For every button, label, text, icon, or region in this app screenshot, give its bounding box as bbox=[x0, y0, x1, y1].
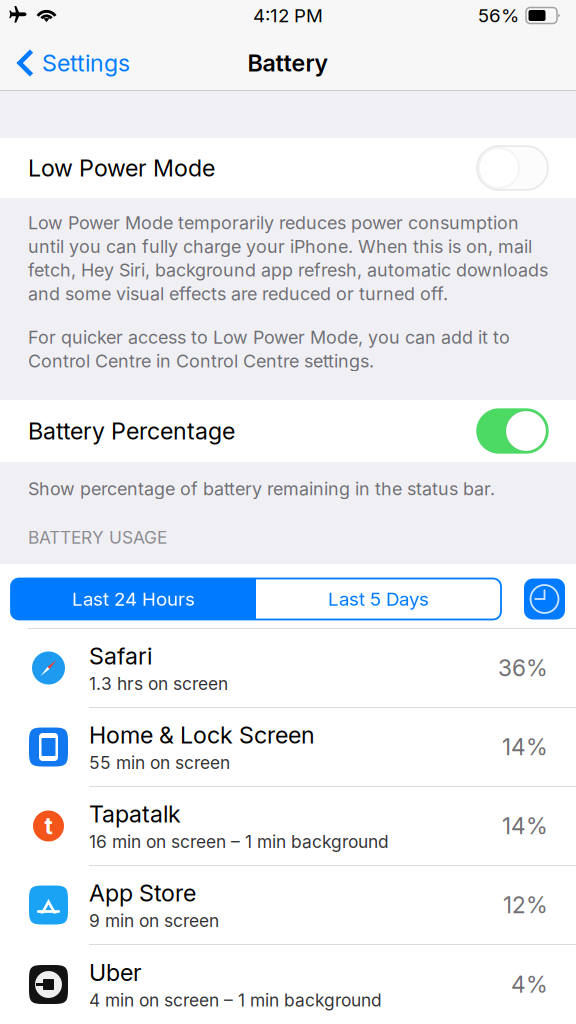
button[interactable]: Home & Lock Screen bbox=[0, 708, 576, 787]
staticText: BATTERY USAGE bbox=[28, 527, 167, 548]
staticText: 4:12 PM bbox=[253, 4, 323, 27]
staticText: Battery bbox=[247, 49, 328, 77]
staticText: 1.3 hrs on screen bbox=[89, 673, 228, 694]
staticText: t bbox=[44, 812, 52, 840]
staticText: Home & Lock Screen bbox=[89, 721, 315, 749]
staticText: Low Power Mode bbox=[28, 154, 215, 182]
staticText: 4% bbox=[511, 971, 548, 998]
staticText: Battery Percentage bbox=[28, 417, 235, 445]
staticText: Low Power Mode temporarily reduces power… bbox=[28, 212, 548, 304]
staticText: 16 min on screen – 1 min background bbox=[89, 831, 389, 852]
staticText: For quicker access to Low Power Mode, yo… bbox=[28, 326, 510, 372]
button[interactable]: Last 24 Hours bbox=[11, 578, 256, 619]
staticText: 36% bbox=[498, 654, 548, 682]
staticText: 9 min on screen bbox=[89, 910, 219, 931]
staticText: 4 min on screen – 1 min background bbox=[89, 990, 382, 1011]
button[interactable]: Low Power Mode bbox=[0, 138, 576, 198]
staticText: 14% bbox=[502, 733, 548, 761]
staticText: 56% bbox=[478, 4, 519, 27]
staticText: 12% bbox=[503, 891, 548, 919]
staticText: Tapatalk bbox=[89, 800, 181, 828]
button[interactable]: t bbox=[0, 787, 576, 866]
button[interactable]: Safari bbox=[0, 629, 576, 708]
staticText: Safari bbox=[89, 642, 152, 670]
staticText: Last 5 Days bbox=[328, 588, 429, 610]
staticText: Show percentage of battery remaining in … bbox=[28, 478, 495, 500]
button[interactable]: Settings bbox=[0, 36, 142, 90]
staticText: App Store bbox=[89, 879, 196, 907]
button[interactable]: Uber bbox=[0, 945, 576, 1024]
staticText: Settings bbox=[42, 49, 130, 77]
staticText: 14% bbox=[502, 812, 548, 840]
staticText: Last 24 Hours bbox=[72, 588, 195, 610]
button[interactable]: App Store bbox=[0, 866, 576, 945]
button[interactable]: Last 5 Days bbox=[256, 578, 501, 619]
staticText: 55 min on screen bbox=[89, 752, 230, 773]
button[interactable]: Battery Percentage bbox=[0, 400, 576, 462]
button[interactable]: Battery usage over time bbox=[524, 578, 565, 619]
staticText: Uber bbox=[89, 958, 142, 987]
